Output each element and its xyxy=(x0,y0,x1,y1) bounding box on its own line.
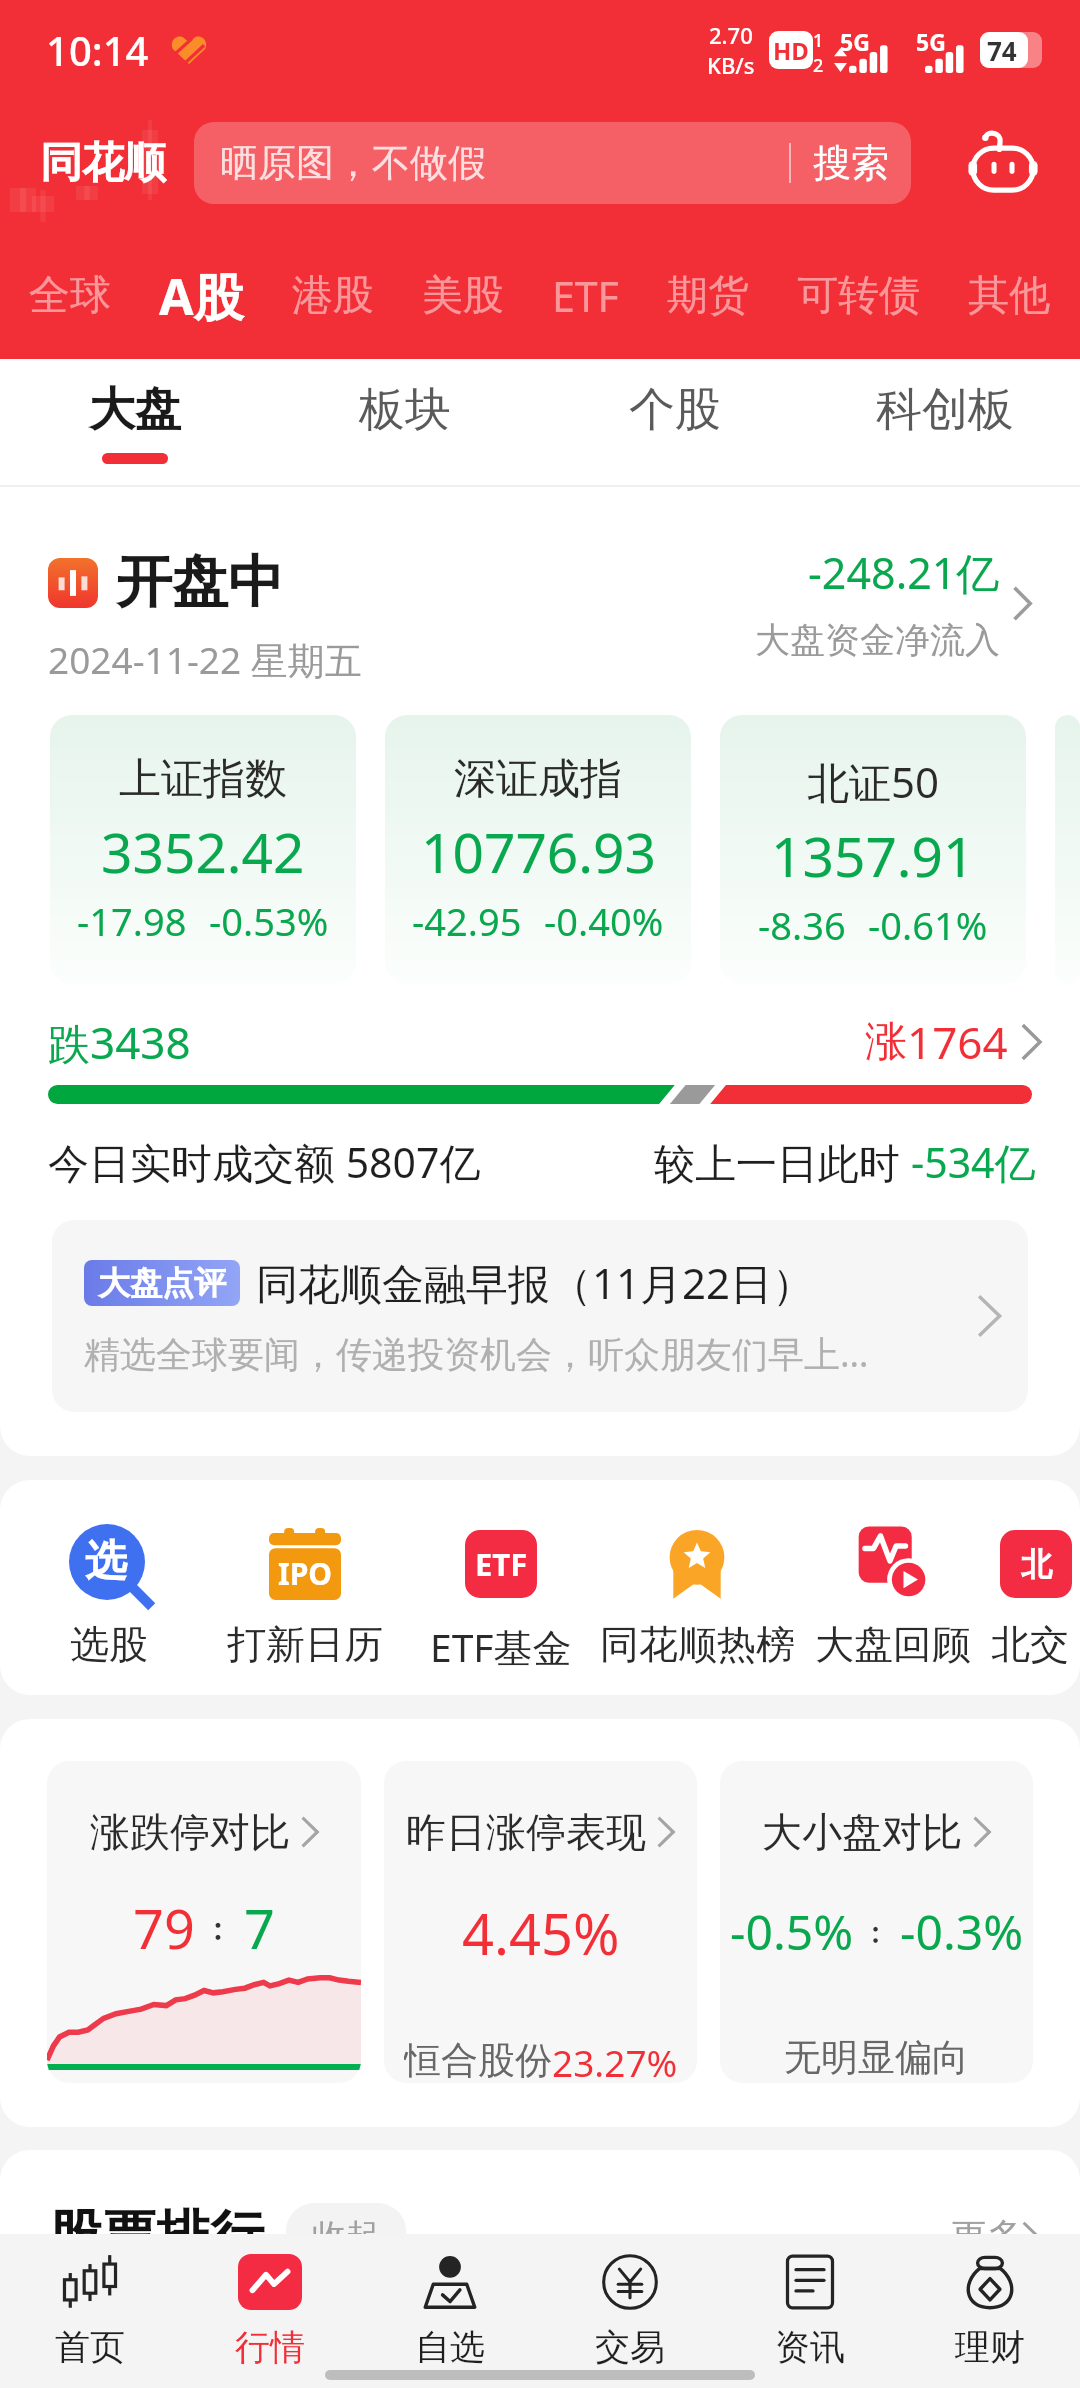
staticText: ︰ xyxy=(195,1906,244,1950)
staticText: 自选 xyxy=(415,2325,485,2369)
staticText: HD xyxy=(773,34,809,67)
staticText: 上证指数 xyxy=(119,753,287,806)
staticText: -0.61% xyxy=(868,899,988,951)
staticText: 7 xyxy=(244,1891,275,1965)
staticText: 较上一日此时 xyxy=(654,1134,911,1190)
staticText: 2.70 xyxy=(709,20,753,50)
staticText: 首页 xyxy=(55,2325,125,2369)
button[interactable]: -248.21亿 xyxy=(755,557,1032,676)
staticText: 大盘回顾 xyxy=(815,1620,971,1669)
button[interactable]: 北证50 xyxy=(720,715,1026,984)
staticText: -248.21亿 xyxy=(808,543,1000,602)
staticText: 昨日涨停表现 xyxy=(406,1807,646,1857)
staticText: 大盘 xyxy=(89,381,181,439)
staticText: -0.40% xyxy=(544,895,664,947)
staticText: 74 xyxy=(987,33,1017,68)
button[interactable]: AI assistant xyxy=(958,118,1048,208)
button[interactable]: 交易 xyxy=(540,2254,720,2369)
staticText: A股 xyxy=(159,262,244,330)
staticText: 大盘点评 xyxy=(98,1263,226,1303)
button[interactable]: 个股 xyxy=(540,359,810,485)
staticText: 3438 xyxy=(90,1012,191,1072)
button[interactable]: 理财 xyxy=(900,2254,1080,2369)
button[interactable]: 更多 xyxy=(951,2214,1040,2259)
staticText: 深证成指 xyxy=(454,753,622,806)
staticText: 1764 xyxy=(907,1012,1008,1072)
staticText: 理财 xyxy=(955,2325,1025,2369)
staticText: 晒原图，不做假 xyxy=(220,139,486,187)
button[interactable]: IPO xyxy=(207,1524,403,1669)
staticText: 23.27% xyxy=(552,2037,678,2083)
staticText: 恒合股份 xyxy=(404,2037,552,2083)
button[interactable]: 同花顺热榜 xyxy=(599,1524,795,1669)
staticText: 选股 xyxy=(70,1620,148,1669)
staticText: 收起 xyxy=(312,2215,380,2258)
staticText: 其他 xyxy=(968,270,1050,322)
button[interactable]: 大小盘对比 xyxy=(720,1761,1033,2083)
staticText: 资讯 xyxy=(775,2325,845,2369)
button[interactable]: 上证指数 xyxy=(50,715,356,984)
button[interactable]: 晒原图，不做假 xyxy=(194,122,911,204)
button[interactable]: ETF xyxy=(528,254,643,338)
button[interactable]: 自选 xyxy=(360,2254,540,2369)
button[interactable]: ETF xyxy=(403,1524,599,1673)
button[interactable]: 大盘点评 xyxy=(52,1220,1028,1412)
staticText: IPO xyxy=(278,1553,333,1594)
staticText: 79 xyxy=(133,1891,195,1965)
staticText: -0.53% xyxy=(209,895,329,947)
button[interactable]: 涨跌停对比 xyxy=(47,1761,361,2083)
staticText: 可转债 xyxy=(797,270,920,322)
staticText: 个股 xyxy=(629,381,721,439)
button[interactable]: 行情 xyxy=(180,2254,360,2369)
staticText: 同花顺金融早报（11月22日） xyxy=(256,1254,815,1311)
staticText: 大小盘对比 xyxy=(762,1807,962,1857)
staticText: 北 xyxy=(1021,1545,1052,1584)
staticText: 2024-11-22 星期五 xyxy=(48,634,362,685)
button[interactable]: 大盘回顾 xyxy=(795,1524,991,1669)
button[interactable]: 北 xyxy=(991,1524,1080,1669)
button[interactable]: 板块 xyxy=(270,359,540,485)
button[interactable]: 选 xyxy=(11,1524,207,1669)
button[interactable]: 收起 xyxy=(286,2203,406,2270)
button[interactable]: 期货 xyxy=(643,256,773,336)
button[interactable]: A股 xyxy=(135,248,268,344)
staticText: 4.45% xyxy=(462,1895,620,1971)
button[interactable]: 首页 xyxy=(0,2254,180,2369)
button[interactable]: 深证成指 xyxy=(385,715,691,984)
staticText: 选 xyxy=(85,1535,127,1588)
button[interactable]: 其他 xyxy=(944,256,1074,336)
button[interactable] xyxy=(1055,715,1080,984)
button[interactable]: 跌 xyxy=(48,1012,1042,1072)
button[interactable]: 美股 xyxy=(398,256,528,336)
button[interactable]: 可转债 xyxy=(773,256,944,336)
button[interactable]: 全球 xyxy=(5,256,135,336)
staticText: 涨 xyxy=(865,1016,907,1069)
button[interactable]: 资讯 xyxy=(720,2254,900,2369)
button[interactable]: 科创板 xyxy=(810,359,1080,485)
button[interactable]: 昨日涨停表现 xyxy=(384,1761,697,2083)
staticText: 跌 xyxy=(48,1019,90,1072)
staticText: 北交所 xyxy=(991,1620,1080,1669)
staticText: 同花顺热榜 xyxy=(600,1620,795,1669)
staticText: -17.98 xyxy=(77,895,187,947)
staticText: ETF xyxy=(475,1543,528,1585)
staticText: 股票排行 xyxy=(48,2202,264,2270)
staticText: 大盘资金净流入 xyxy=(755,618,1000,662)
staticText: 3352.42 xyxy=(101,814,305,889)
button[interactable]: 大盘 xyxy=(0,359,270,485)
staticText: 行情 xyxy=(235,2325,305,2369)
staticText: -0.3% xyxy=(900,1899,1024,1964)
staticText: 5G xyxy=(916,26,946,57)
staticText: -8.36 xyxy=(758,899,846,951)
staticText: 2 xyxy=(813,53,824,72)
staticText: 涨跌停对比 xyxy=(90,1807,290,1857)
staticText: 搜索 xyxy=(813,139,889,187)
button[interactable]: 港股 xyxy=(268,256,398,336)
staticText: 5G xyxy=(840,26,870,57)
staticText: 开盘中 xyxy=(116,547,284,618)
staticText: 1357.91 xyxy=(771,818,975,893)
staticText: 精选全球要闻，传递投资机会，听众朋友们早上… xyxy=(84,1329,869,1378)
staticText: -534亿 xyxy=(911,1134,1036,1190)
staticText: 10776.93 xyxy=(421,814,656,889)
staticText: 同花顺 xyxy=(40,137,166,190)
